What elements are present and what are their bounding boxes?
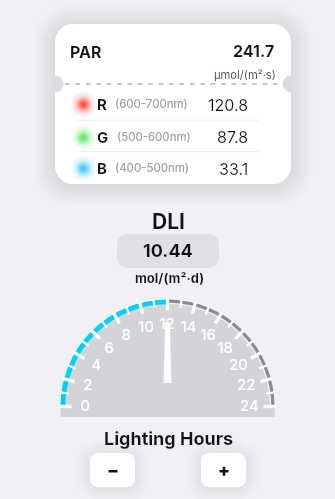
staticText: R [97,95,107,113]
staticText: Lighting Hours [104,428,234,450]
button[interactable]: Decrease lighting hours [90,453,135,487]
staticText: 33.1 [219,159,249,178]
staticText: 10.44 [143,240,193,262]
staticText: µmol/(m²·s) [214,68,276,82]
staticText: (600-700nm) [115,97,188,111]
staticText: 241.7 [233,41,275,60]
staticText: G [97,128,109,146]
staticText: (400-500nm) [115,161,189,175]
button[interactable]: B [70,152,242,184]
staticText: mol/(m²·d) [135,270,205,286]
staticText: B [97,159,107,177]
staticText: PAR [70,42,102,61]
button[interactable]: G [70,121,242,153]
staticText: 120.8 [208,95,249,114]
staticText: 87.8 [217,127,249,146]
staticText: DLI [152,209,185,234]
button[interactable]: Increase lighting hours [201,453,246,487]
button[interactable]: R [70,88,242,120]
staticText: (500-600nm) [117,130,191,144]
